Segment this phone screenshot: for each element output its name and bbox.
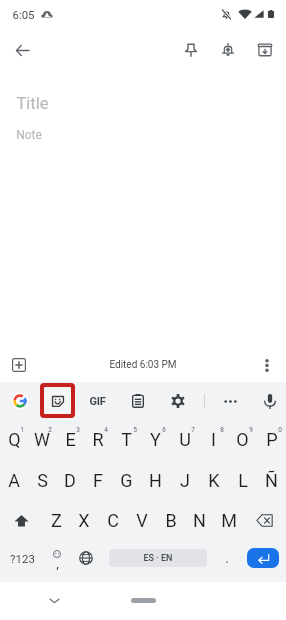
button[interactable]: B bbox=[156, 505, 185, 536]
button[interactable]: G bbox=[112, 465, 141, 496]
staticText: V bbox=[136, 510, 148, 531]
button[interactable]: Enter bbox=[247, 548, 279, 568]
staticText: ES · EN bbox=[143, 553, 173, 564]
staticText: C bbox=[107, 510, 119, 531]
button[interactable]: L bbox=[228, 465, 257, 496]
staticText: Note bbox=[16, 128, 42, 142]
staticText: Y bbox=[150, 429, 161, 450]
button[interactable]: N bbox=[185, 505, 214, 536]
button[interactable]: W bbox=[28, 424, 56, 455]
staticText: E bbox=[65, 429, 76, 450]
staticText: 9 bbox=[249, 426, 253, 434]
button[interactable]: ES · EN bbox=[109, 549, 207, 567]
button[interactable]: P bbox=[257, 424, 286, 455]
staticText: 2 bbox=[48, 426, 52, 434]
staticText: . bbox=[225, 550, 229, 566]
button[interactable]: E bbox=[56, 424, 84, 455]
staticText: T bbox=[121, 429, 132, 450]
button[interactable]: More options bbox=[254, 352, 280, 378]
staticText: G bbox=[120, 470, 133, 491]
staticText: N bbox=[193, 510, 206, 531]
button[interactable]: R bbox=[84, 424, 112, 455]
staticText: R bbox=[92, 429, 104, 450]
staticText: K bbox=[208, 470, 220, 491]
staticText: 1 bbox=[20, 426, 24, 434]
button[interactable]: Z bbox=[42, 505, 70, 536]
staticText: J bbox=[180, 470, 190, 491]
staticText: F bbox=[93, 470, 103, 491]
button[interactable]: U bbox=[170, 424, 199, 455]
button[interactable]: M bbox=[214, 505, 243, 536]
button[interactable]: H bbox=[141, 465, 170, 496]
button[interactable]: Q bbox=[0, 424, 28, 455]
staticText: I bbox=[211, 429, 216, 450]
button[interactable]: O bbox=[228, 424, 257, 455]
button[interactable]: T bbox=[112, 424, 141, 455]
staticText: H bbox=[149, 470, 162, 491]
button[interactable]: I bbox=[199, 424, 228, 455]
button[interactable]: Settings bbox=[165, 388, 191, 414]
button[interactable]: Emoji and comma bbox=[44, 540, 70, 576]
staticText: 0 bbox=[278, 426, 282, 434]
staticText: GIF bbox=[89, 395, 106, 408]
staticText: A bbox=[8, 470, 20, 491]
button[interactable]: Reminder bbox=[211, 33, 245, 67]
button[interactable]: A bbox=[0, 465, 28, 496]
staticText: 6:05 bbox=[12, 8, 35, 21]
button[interactable]: Backspace bbox=[243, 505, 286, 536]
staticText: Ñ bbox=[265, 470, 278, 491]
button[interactable]: Change language bbox=[70, 540, 102, 576]
button[interactable]: Navigate up bbox=[5, 33, 39, 67]
staticText: , bbox=[56, 556, 59, 571]
button[interactable]: V bbox=[127, 505, 156, 536]
button[interactable]: Ñ bbox=[257, 465, 286, 496]
staticText: 7 bbox=[191, 426, 195, 434]
button[interactable]: Google search bbox=[7, 388, 33, 414]
button[interactable]: X bbox=[70, 505, 98, 536]
staticText: Z bbox=[51, 510, 62, 531]
staticText: 3 bbox=[76, 426, 80, 434]
button[interactable]: Stickers bbox=[40, 383, 75, 418]
staticText: M bbox=[221, 510, 237, 531]
staticText: U bbox=[179, 429, 191, 450]
button[interactable]: Pin note bbox=[174, 33, 208, 67]
staticText: O bbox=[236, 429, 249, 450]
staticText: L bbox=[238, 470, 248, 491]
button[interactable]: C bbox=[98, 505, 127, 536]
button[interactable]: F bbox=[84, 465, 112, 496]
button[interactable]: Clipboard bbox=[125, 388, 151, 414]
button[interactable]: Shift bbox=[0, 505, 42, 536]
button[interactable]: More keyboard options bbox=[217, 388, 243, 414]
staticText: Q bbox=[8, 429, 21, 450]
button[interactable]: Add bbox=[6, 352, 32, 378]
staticText: ?123 bbox=[10, 552, 35, 565]
button[interactable]: Voice input bbox=[257, 388, 283, 414]
staticText: 6 bbox=[162, 426, 166, 434]
staticText: Edited 6:03 PM bbox=[109, 359, 177, 371]
button[interactable]: D bbox=[56, 465, 84, 496]
button[interactable]: K bbox=[199, 465, 228, 496]
button[interactable]: Hide keyboard bbox=[42, 588, 66, 612]
staticText: P bbox=[266, 429, 278, 450]
button[interactable]: S bbox=[28, 465, 56, 496]
staticText: Title bbox=[16, 94, 49, 113]
button[interactable]: . bbox=[214, 540, 240, 576]
button[interactable]: GIF bbox=[84, 388, 110, 414]
staticText: S bbox=[37, 470, 48, 491]
button[interactable]: J bbox=[170, 465, 199, 496]
staticText: X bbox=[78, 510, 90, 531]
button[interactable]: Y bbox=[141, 424, 170, 455]
staticText: 5 bbox=[133, 426, 137, 434]
staticText: 4 bbox=[104, 426, 108, 434]
staticText: B bbox=[165, 510, 177, 531]
staticText: W bbox=[34, 429, 50, 450]
button[interactable]: ?123 bbox=[0, 540, 44, 576]
staticText: 8 bbox=[220, 426, 224, 434]
button[interactable]: Archive bbox=[248, 33, 282, 67]
staticText: D bbox=[64, 470, 76, 491]
